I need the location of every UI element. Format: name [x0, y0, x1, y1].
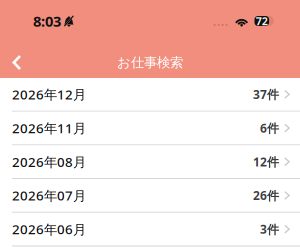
staticText: 2026年06月 — [12, 220, 86, 238]
staticText: お仕事検索 — [117, 54, 183, 71]
staticText: 8:03 — [33, 11, 61, 31]
staticText: 2026年12月 — [12, 85, 86, 103]
button[interactable]: 2026年07月 — [0, 179, 300, 213]
staticText: 26件 — [253, 187, 279, 203]
button[interactable]: 2026年11月 — [0, 112, 300, 145]
button[interactable]: 2026年08月 — [0, 145, 300, 179]
button[interactable]: Back — [0, 42, 34, 82]
staticText: 2026年08月 — [12, 153, 86, 171]
staticText: 37件 — [253, 86, 279, 102]
button[interactable]: 2026年12月 — [0, 78, 300, 112]
staticText: 3件 — [260, 221, 279, 237]
button[interactable]: 2026年06月 — [0, 213, 300, 246]
staticText: 12件 — [253, 154, 279, 170]
staticText: 2026年07月 — [12, 187, 86, 204]
staticText: 72 — [256, 14, 268, 28]
staticText: 6件 — [260, 120, 279, 136]
staticText: 2026年11月 — [12, 119, 86, 137]
